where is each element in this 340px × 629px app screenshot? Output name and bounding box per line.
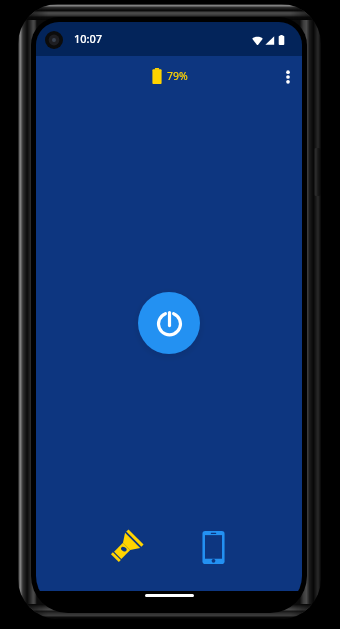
staticText: 79% — [167, 69, 188, 83]
button[interactable]: Flashlight — [101, 522, 149, 570]
button[interactable]: Power toggle — [138, 292, 200, 354]
button[interactable]: More options — [270, 59, 302, 95]
button[interactable]: Screen light — [189, 522, 237, 570]
staticText: 10:07 — [74, 31, 103, 46]
